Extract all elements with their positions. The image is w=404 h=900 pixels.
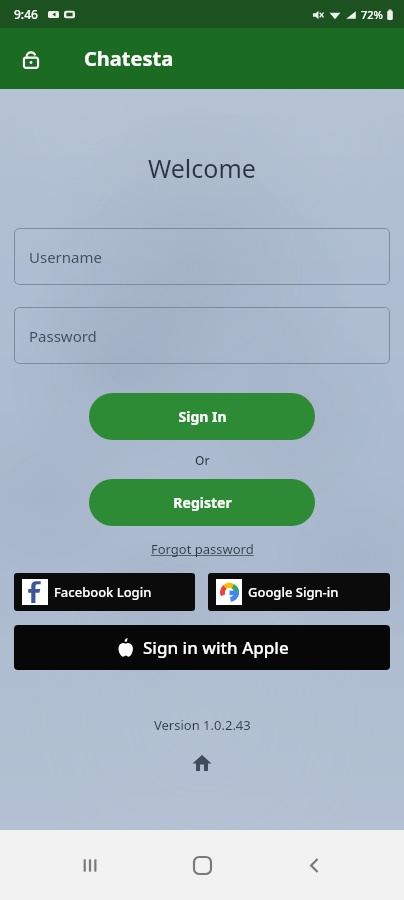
button[interactable]: Recent apps xyxy=(68,843,112,887)
button[interactable]: Username xyxy=(14,228,390,285)
button[interactable]: Forgot password xyxy=(147,538,258,560)
staticText: Register xyxy=(173,493,232,512)
button[interactable]: Home xyxy=(180,843,224,887)
staticText: 9:46 xyxy=(14,6,38,22)
button[interactable]: Sign In xyxy=(89,393,315,440)
staticText: Or xyxy=(195,452,210,468)
button[interactable]: Google Sign-in xyxy=(208,573,390,611)
button[interactable]: Register xyxy=(89,479,315,526)
staticText: Google Sign-in xyxy=(248,583,339,601)
staticText: Forgot password xyxy=(151,540,254,558)
staticText: Sign In xyxy=(178,407,227,426)
staticText: Facebook Login xyxy=(54,583,152,601)
button[interactable]: Facebook Login xyxy=(14,573,195,611)
button[interactable]: Unlock xyxy=(10,38,52,80)
staticText: Version 1.0.2.43 xyxy=(154,716,251,734)
staticText: Welcome xyxy=(148,151,256,185)
staticText: Password xyxy=(29,326,97,346)
button[interactable]: Home xyxy=(187,748,217,778)
staticText: 72% xyxy=(361,7,383,22)
staticText: Chatesta xyxy=(84,45,174,72)
button[interactable]: Back xyxy=(292,843,336,887)
staticText: Sign in with Apple xyxy=(143,636,289,659)
button[interactable]: Sign in with Apple xyxy=(14,625,390,670)
staticText: Username xyxy=(29,247,102,267)
button[interactable]: Password xyxy=(14,307,390,364)
